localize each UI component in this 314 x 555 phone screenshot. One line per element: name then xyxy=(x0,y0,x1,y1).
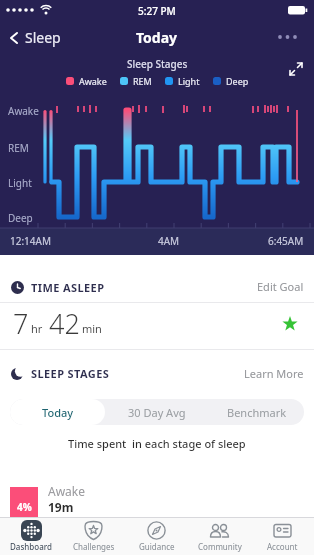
button[interactable]: Learn More xyxy=(244,366,304,381)
staticText: Guidance xyxy=(139,541,175,552)
staticText: 7 xyxy=(13,305,29,342)
staticText: SLEEP STAGES xyxy=(31,366,110,381)
button[interactable]: Account xyxy=(251,517,314,555)
staticText: Deep xyxy=(226,75,249,87)
staticText: Community xyxy=(198,541,242,552)
staticText: Awake xyxy=(48,483,86,499)
staticText: Today xyxy=(42,405,74,420)
button[interactable]: Guidance xyxy=(125,517,188,555)
staticText: Sleep xyxy=(25,28,61,47)
staticText: Time spent in each stage of sleep xyxy=(68,436,246,451)
staticText: 30 Day Avg xyxy=(128,405,186,420)
staticText: Sleep Stages xyxy=(127,57,188,71)
button[interactable]: Dashboard xyxy=(0,517,62,555)
staticText: min xyxy=(82,321,102,336)
staticText: Challenges xyxy=(73,541,115,552)
button[interactable]: Today xyxy=(10,399,105,425)
button[interactable]: Sleep xyxy=(8,28,61,47)
staticText: Today xyxy=(136,28,178,47)
staticText: 4AM xyxy=(158,234,180,248)
staticText: Awake xyxy=(8,104,39,118)
staticText: Awake xyxy=(79,75,107,87)
button[interactable] xyxy=(282,316,298,332)
button[interactable]: Community xyxy=(188,517,251,555)
staticText: Account xyxy=(267,541,298,552)
staticText: 12:14AM xyxy=(10,234,52,248)
button[interactable]: Challenges xyxy=(62,517,125,555)
button[interactable]: Benchmark xyxy=(209,399,304,425)
staticText: 4% xyxy=(17,500,32,514)
staticText: REM xyxy=(8,141,29,155)
button[interactable] xyxy=(289,62,303,76)
staticText: Light xyxy=(178,75,200,87)
staticText: Light xyxy=(8,176,32,190)
staticText: Dashboard xyxy=(10,541,52,552)
staticText: Deep xyxy=(8,211,33,225)
button[interactable] xyxy=(276,33,302,41)
staticText: hr xyxy=(31,321,43,336)
staticText: Benchmark xyxy=(227,405,287,420)
staticText: 19m xyxy=(48,499,74,515)
staticText: REM xyxy=(133,75,152,87)
staticText: 6:45AM xyxy=(268,234,304,248)
staticText: 42 xyxy=(49,305,80,342)
staticText: TIME ASLEEP xyxy=(31,280,105,295)
button[interactable]: Edit Goal xyxy=(257,279,304,294)
button[interactable]: 30 Day Avg xyxy=(105,399,209,425)
staticText: 5:27 PM xyxy=(138,4,176,18)
